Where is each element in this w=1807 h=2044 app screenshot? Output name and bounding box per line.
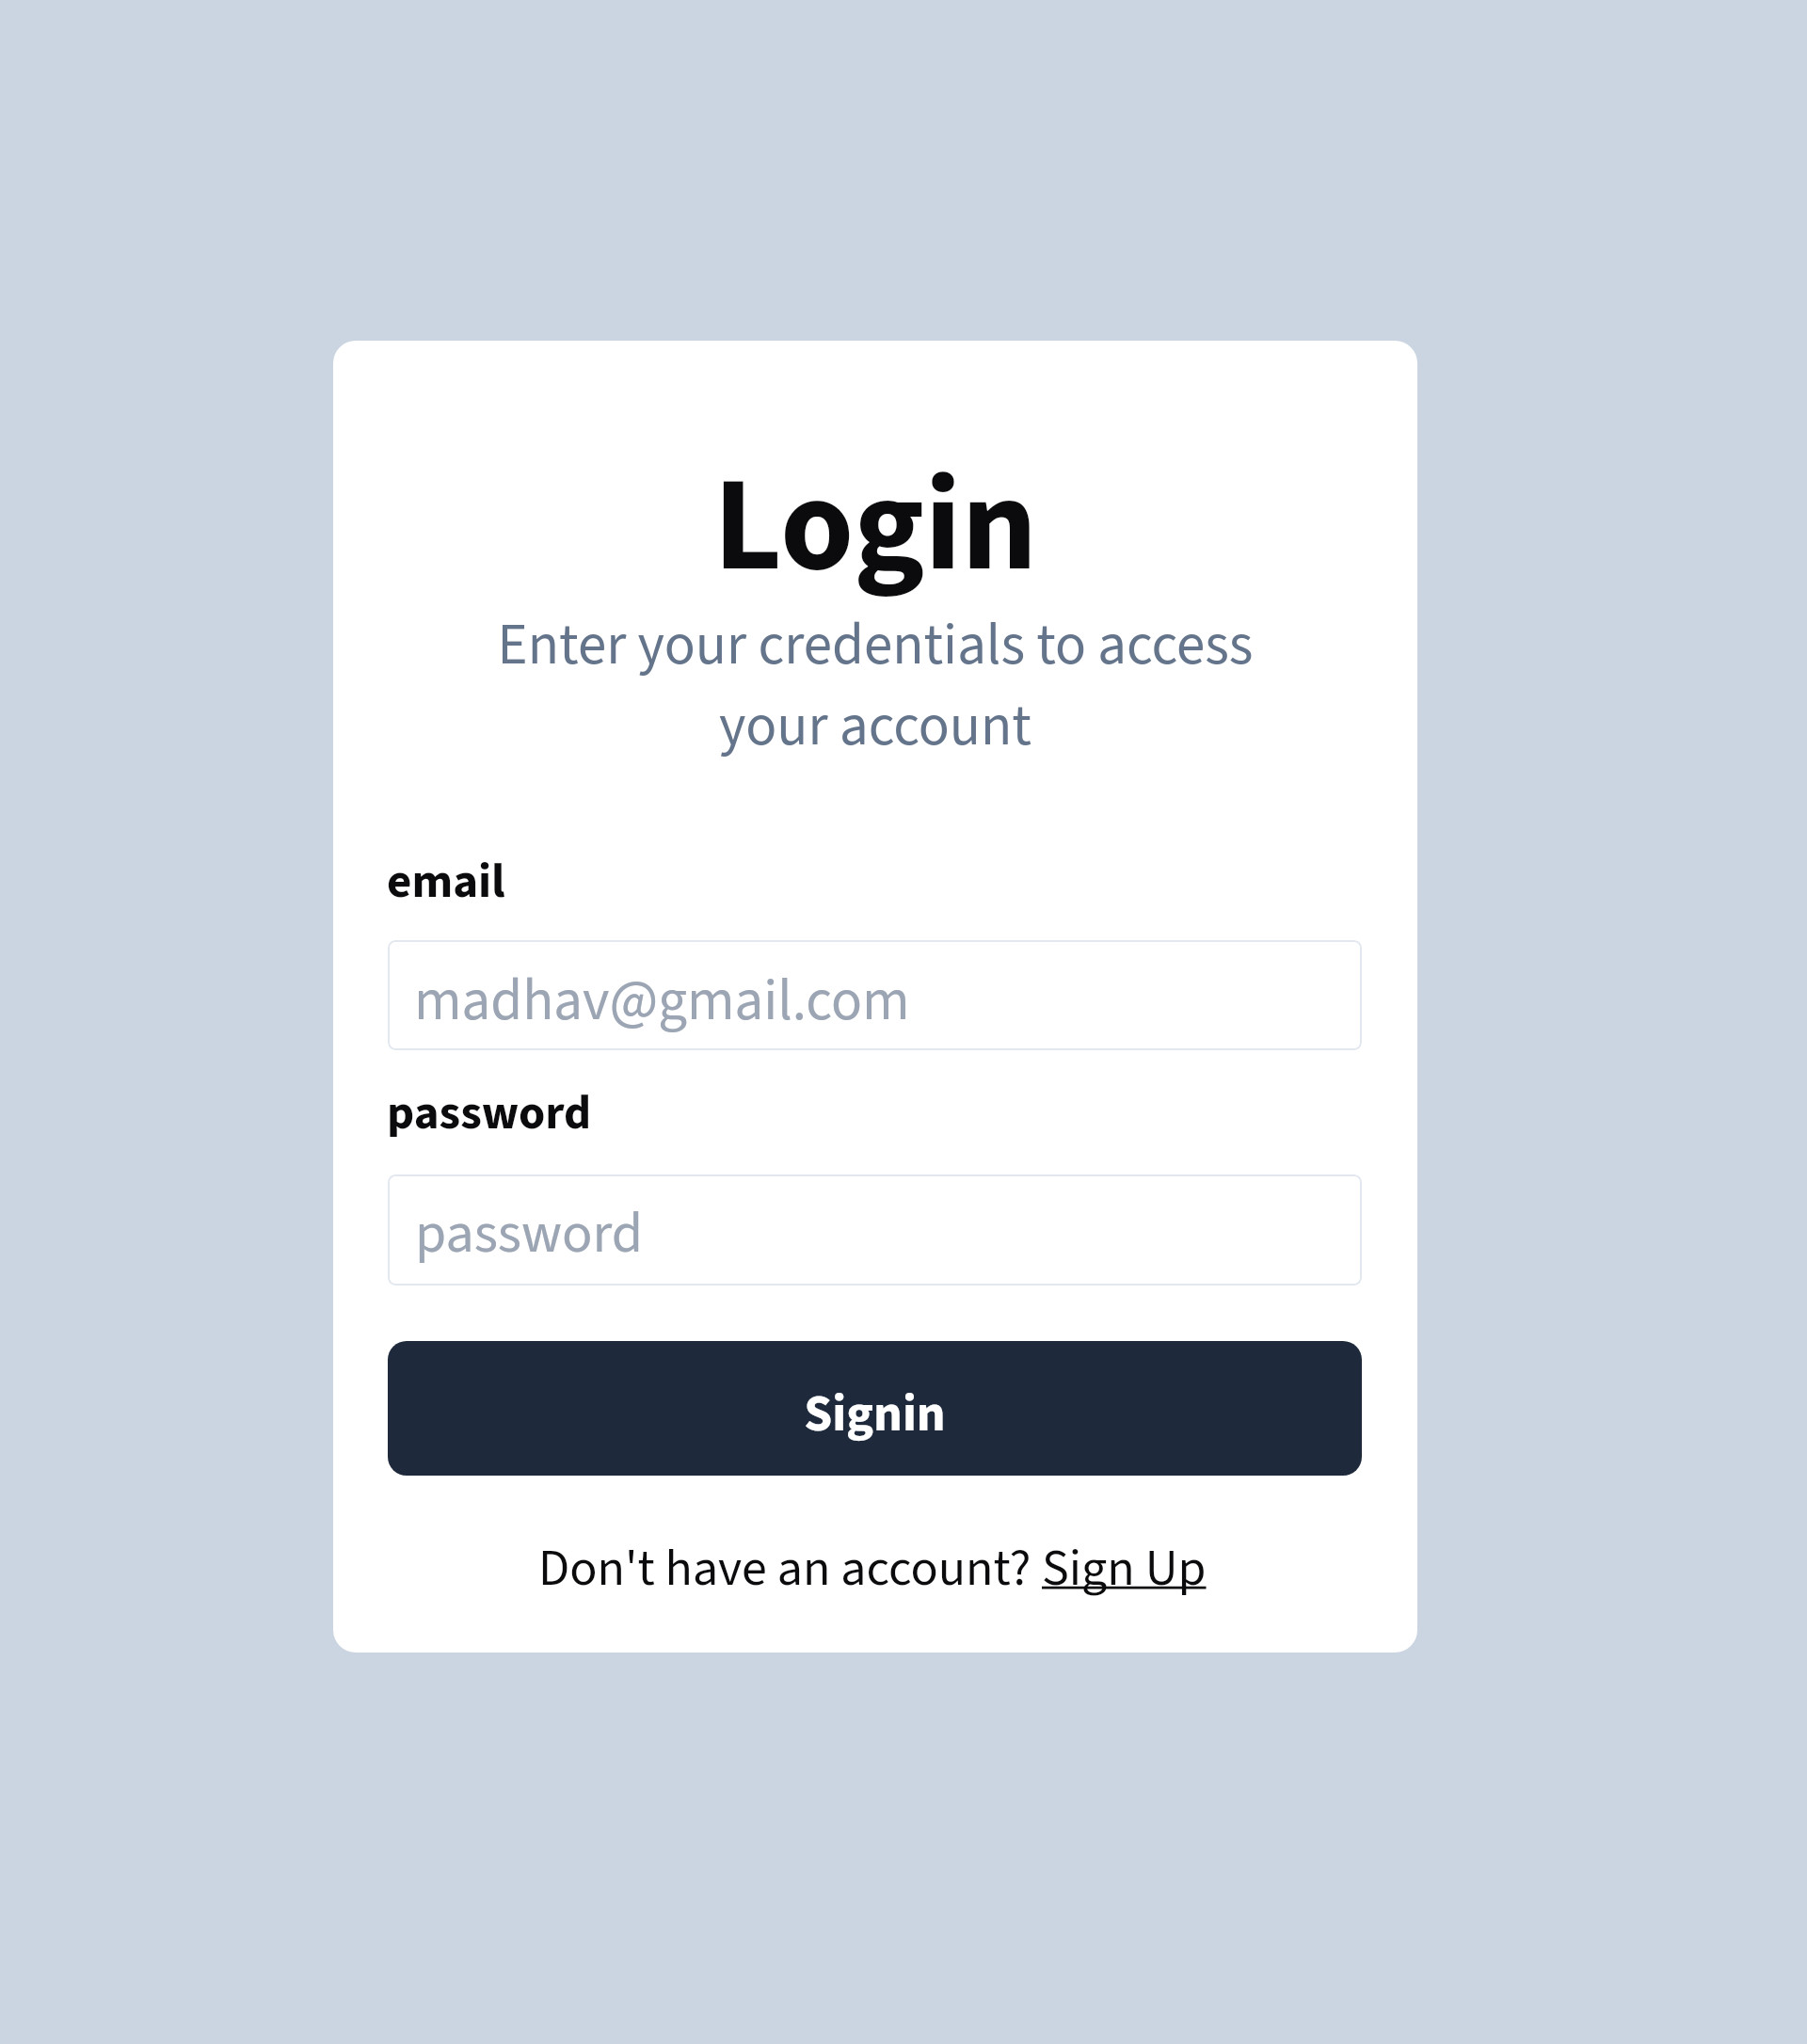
- staticText: your account: [333, 686, 1417, 768]
- staticText: password: [387, 1079, 592, 1148]
- staticText: password: [415, 1194, 643, 1274]
- staticText: Sign Up: [1042, 1533, 1207, 1605]
- button[interactable]: madhav@gmail.com: [388, 940, 1362, 1050]
- button[interactable]: Signin: [388, 1341, 1362, 1476]
- staticText: madhav@gmail.com: [414, 961, 910, 1043]
- staticText: email: [387, 848, 505, 917]
- staticText: Enter your credentials to access: [333, 605, 1417, 687]
- staticText: Login: [333, 433, 1417, 622]
- button[interactable]: password: [388, 1174, 1362, 1285]
- button[interactable]: Sign Up: [1042, 1533, 1207, 1605]
- staticText: Signin: [388, 1379, 1362, 1451]
- staticText: Don't have an account?: [538, 1533, 1042, 1605]
